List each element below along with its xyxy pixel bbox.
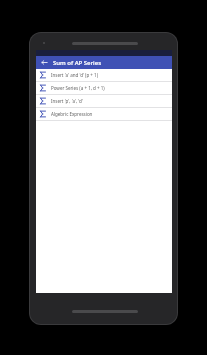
button[interactable]: Insert 'p', 'a', 'd' [36,95,172,107]
button[interactable]: Power Series (a + 1, d + 1) [36,82,172,94]
button[interactable]: Insert 'a' and 'd' (p + 1) [36,69,172,81]
staticText: Sum of AP Series [53,59,102,67]
staticText: Algebric Expression [51,111,93,117]
button[interactable]: Back [40,58,49,67]
staticText: Insert 'p', 'a', 'd' [51,98,83,104]
staticText: Insert 'a' and 'd' (p + 1) [51,72,99,78]
button[interactable]: Algebric Expression [36,108,172,120]
staticText: Power Series (a + 1, d + 1) [51,85,105,91]
